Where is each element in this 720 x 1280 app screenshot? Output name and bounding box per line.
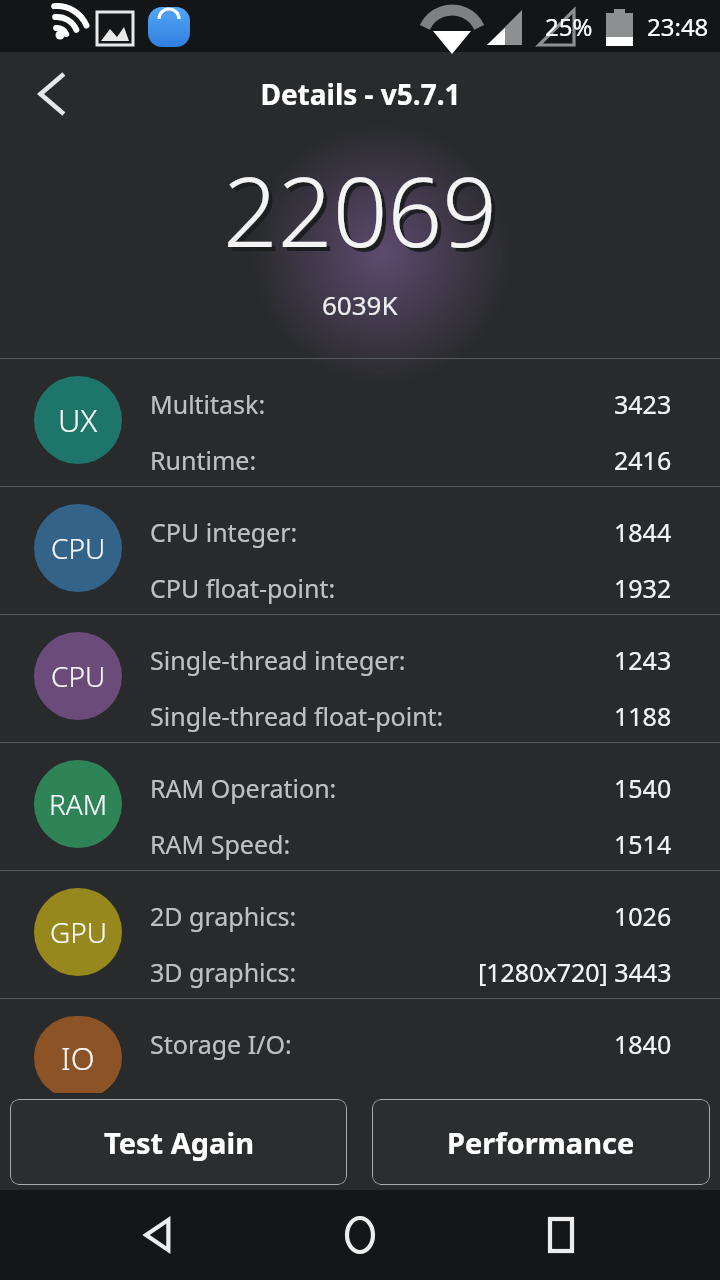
staticText: CPU integer: (150, 515, 298, 549)
staticText: Details - v5.7.1 (260, 75, 461, 113)
staticText: CPU (51, 529, 106, 567)
staticText: Multitask: (150, 387, 266, 421)
staticText: 22069 (227, 148, 502, 279)
staticText: Runtime: (150, 443, 257, 477)
staticText: 22069 (223, 144, 498, 275)
staticText: 3423 (614, 387, 672, 421)
staticText: CPU float-point: (150, 571, 336, 605)
button[interactable]: IO (0, 999, 720, 1099)
staticText: IO (61, 1037, 95, 1079)
staticText: Storage I/O: (150, 1027, 292, 1061)
staticText: 23:48 (647, 10, 709, 43)
staticText: 1844 (614, 515, 672, 549)
staticText: 1243 (614, 643, 672, 677)
staticText: [1280x720] 3443 (478, 955, 672, 989)
button[interactable]: Back (117, 1193, 201, 1277)
button[interactable]: RAM (0, 743, 720, 870)
staticText: 1026 (614, 899, 672, 933)
button[interactable]: Test Again (10, 1099, 347, 1185)
staticText: UX (58, 399, 98, 441)
staticText: 1540 (614, 771, 672, 805)
staticText: 2416 (614, 443, 672, 477)
staticText: CPU (51, 657, 106, 695)
button[interactable]: CPU (0, 487, 720, 614)
button[interactable]: Recents (519, 1193, 603, 1277)
button[interactable]: GPU (0, 871, 720, 998)
staticText: 2D graphics: (150, 899, 297, 933)
staticText: 1188 (614, 699, 672, 733)
staticText: 1840 (614, 1027, 672, 1061)
button[interactable]: CPU (0, 615, 720, 742)
staticText: RAM Speed: (150, 827, 291, 861)
button[interactable]: Back (16, 58, 88, 130)
staticText: RAM Operation: (150, 771, 337, 805)
staticText: 25% (545, 10, 593, 43)
staticText: 1932 (614, 571, 672, 605)
staticText: Single-thread integer: (150, 643, 406, 677)
staticText: Test Again (104, 1123, 254, 1162)
staticText: 3D graphics: (150, 955, 297, 989)
staticText: Performance (447, 1123, 635, 1162)
button[interactable]: Home (318, 1193, 402, 1277)
button[interactable]: Performance (372, 1099, 710, 1185)
button[interactable]: UX (0, 359, 720, 486)
staticText: Single-thread float-point: (150, 699, 444, 733)
staticText: 6039K (322, 287, 398, 322)
staticText: RAM (49, 785, 108, 823)
staticText: GPU (50, 913, 107, 951)
staticText: 1514 (614, 827, 672, 861)
